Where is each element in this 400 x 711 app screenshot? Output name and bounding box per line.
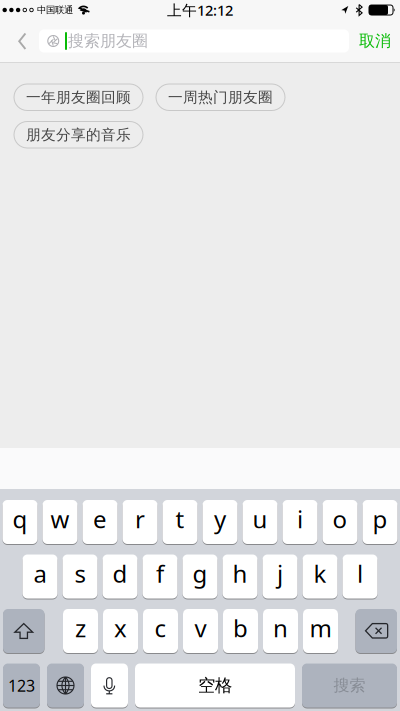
staticText: l: [357, 558, 363, 589]
button[interactable]: x: [103, 609, 138, 653]
staticText: t: [175, 503, 184, 535]
button[interactable]: q: [2, 500, 37, 544]
staticText: 一年朋友圈回顾: [26, 88, 131, 106]
staticText: c: [154, 612, 166, 644]
staticText: 朋友分享的音乐: [26, 126, 131, 144]
button[interactable]: 搜索朋友圈: [39, 29, 349, 52]
staticText: f: [156, 558, 164, 589]
button[interactable]: 听写: [91, 663, 128, 707]
staticText: p: [372, 503, 387, 535]
button[interactable]: a: [22, 554, 57, 598]
staticText: e: [93, 503, 107, 535]
staticText: 123: [8, 675, 35, 696]
button[interactable]: o: [322, 500, 357, 544]
button[interactable]: e: [82, 500, 117, 544]
button[interactable]: l: [342, 554, 377, 598]
button[interactable]: 删除: [355, 609, 397, 653]
button[interactable]: 取消: [349, 31, 400, 51]
staticText: m: [309, 612, 331, 644]
button[interactable]: 一年朋友圈回顾: [14, 84, 143, 110]
button[interactable]: h: [222, 554, 257, 598]
button[interactable]: 123: [3, 663, 40, 707]
staticText: v: [194, 612, 206, 644]
staticText: 中国联通: [37, 4, 73, 16]
button[interactable]: j: [262, 554, 297, 598]
button[interactable]: 一周热门朋友圈: [156, 84, 285, 110]
staticText: w: [50, 503, 69, 535]
staticText: h: [232, 558, 247, 589]
button[interactable]: m: [303, 609, 338, 653]
staticText: y: [214, 503, 226, 535]
button[interactable]: k: [302, 554, 337, 598]
staticText: 搜索朋友圈: [68, 31, 148, 51]
staticText: 上午12:12: [167, 0, 233, 20]
button[interactable]: d: [102, 554, 137, 598]
staticText: b: [233, 612, 248, 644]
staticText: 空格: [198, 675, 232, 696]
staticText: k: [313, 558, 326, 589]
button[interactable]: Shift: [3, 609, 44, 653]
button[interactable]: r: [122, 500, 157, 544]
button[interactable]: 搜索: [302, 663, 397, 707]
button[interactable]: u: [242, 500, 277, 544]
button[interactable]: 下一个输入法: [47, 663, 84, 707]
button[interactable]: g: [182, 554, 217, 598]
staticText: r: [135, 503, 145, 535]
staticText: i: [297, 503, 303, 535]
button[interactable]: v: [183, 609, 218, 653]
staticText: z: [75, 612, 86, 644]
button[interactable]: w: [42, 500, 77, 544]
staticText: a: [33, 558, 46, 589]
staticText: 搜索: [333, 676, 365, 695]
staticText: j: [277, 558, 283, 589]
staticText: o: [332, 503, 347, 535]
staticText: x: [114, 612, 127, 644]
button[interactable]: 空格: [135, 663, 295, 707]
button[interactable]: p: [362, 500, 397, 544]
button[interactable]: s: [62, 554, 97, 598]
button[interactable]: b: [223, 609, 258, 653]
staticText: g: [192, 558, 207, 589]
staticText: 取消: [359, 31, 391, 51]
button[interactable]: 返回: [0, 32, 39, 49]
button[interactable]: n: [263, 609, 298, 653]
staticText: s: [74, 558, 85, 589]
staticText: d: [112, 558, 127, 589]
button[interactable]: c: [143, 609, 178, 653]
staticText: q: [12, 503, 27, 535]
button[interactable]: 朋友分享的音乐: [14, 121, 143, 148]
staticText: 一周热门朋友圈: [168, 88, 273, 106]
button[interactable]: i: [282, 500, 317, 544]
button[interactable]: f: [142, 554, 177, 598]
button[interactable]: t: [162, 500, 197, 544]
staticText: n: [273, 612, 288, 644]
button[interactable]: z: [63, 609, 98, 653]
button[interactable]: y: [202, 500, 237, 544]
staticText: u: [252, 503, 267, 535]
